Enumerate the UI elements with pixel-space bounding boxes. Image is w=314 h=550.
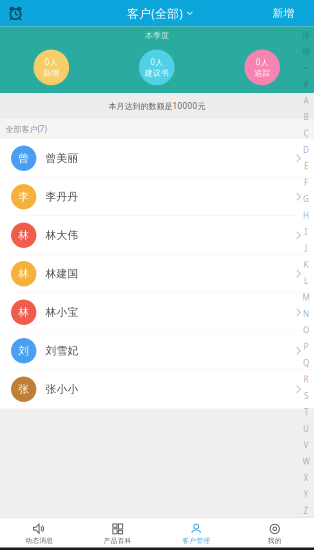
staticText: N bbox=[303, 308, 309, 319]
button[interactable]: 张 bbox=[0, 370, 314, 408]
staticText: O bbox=[303, 325, 309, 335]
button[interactable]: 客户管理 bbox=[157, 518, 235, 547]
staticText: 曾美丽 bbox=[46, 152, 79, 165]
staticText: 林 bbox=[18, 229, 29, 242]
staticText: Z bbox=[303, 505, 308, 516]
staticText: 李丹丹 bbox=[46, 190, 79, 203]
button[interactable]: 动态消息 bbox=[0, 518, 78, 547]
staticText: J bbox=[305, 243, 307, 253]
staticText: S bbox=[304, 390, 308, 401]
staticText: F bbox=[304, 177, 308, 188]
staticText: X bbox=[303, 472, 308, 483]
staticText: 动 bbox=[302, 46, 310, 56]
staticText: C bbox=[303, 128, 308, 139]
staticText: 建议书 bbox=[145, 68, 169, 78]
button[interactable]: 林 bbox=[0, 216, 314, 254]
staticText: 动态消息 bbox=[25, 536, 53, 545]
staticText: B bbox=[303, 112, 308, 122]
staticText: K bbox=[303, 259, 308, 270]
staticText: 我的 bbox=[268, 537, 282, 545]
staticText: ~ bbox=[303, 62, 308, 73]
staticText: T bbox=[304, 407, 308, 417]
staticText: 0人 bbox=[256, 57, 269, 67]
staticText: P bbox=[303, 341, 308, 352]
staticText: 产品百科 bbox=[104, 537, 132, 545]
button[interactable]: 刘 bbox=[0, 331, 314, 370]
staticText: Q bbox=[303, 358, 309, 368]
staticText: 曾 bbox=[18, 152, 29, 165]
staticText: 全部客户(7) bbox=[5, 124, 46, 134]
staticText: V bbox=[303, 440, 308, 450]
staticText: 林大伟 bbox=[46, 229, 79, 242]
button[interactable]: 我的 bbox=[235, 518, 314, 547]
staticText: 追踪 bbox=[254, 68, 270, 78]
staticText: M bbox=[302, 292, 309, 303]
staticText: 0人 bbox=[45, 57, 58, 67]
staticText: 李 bbox=[18, 190, 29, 203]
button[interactable]: 林 bbox=[0, 254, 314, 293]
staticText: 林小宝 bbox=[46, 306, 79, 319]
button[interactable]: 0人 bbox=[33, 50, 69, 85]
staticText: 本季度 bbox=[145, 31, 169, 40]
staticText: I bbox=[304, 226, 307, 237]
staticText: 0人 bbox=[150, 57, 163, 67]
staticText: 本月达到的数额是10000元 bbox=[108, 101, 205, 111]
staticText: 活 bbox=[302, 30, 310, 40]
staticText: # bbox=[303, 79, 308, 89]
staticText: G bbox=[303, 194, 309, 204]
staticText: L bbox=[304, 276, 308, 286]
button[interactable]: 林 bbox=[0, 293, 314, 331]
staticText: H bbox=[303, 210, 309, 221]
button[interactable]: 新增 bbox=[272, 0, 314, 26]
staticText: 林建国 bbox=[46, 267, 79, 280]
button[interactable]: 闹钟 bbox=[0, 0, 31, 26]
staticText: 林 bbox=[18, 267, 29, 280]
staticText: 刘雪妃 bbox=[46, 344, 79, 357]
button[interactable]: 产品百科 bbox=[78, 518, 157, 547]
button[interactable]: 曾 bbox=[0, 139, 314, 177]
staticText: 刘 bbox=[18, 344, 29, 357]
staticText: 新增 bbox=[43, 68, 59, 78]
staticText: 张小小 bbox=[46, 383, 79, 396]
staticText: 林 bbox=[18, 306, 29, 319]
button[interactable]: 客户(全部) bbox=[127, 0, 193, 26]
staticText: 客户管理 bbox=[182, 537, 210, 545]
staticText: 客户(全部) bbox=[127, 5, 183, 21]
staticText: U bbox=[303, 423, 309, 434]
staticText: W bbox=[302, 456, 309, 467]
button[interactable]: 0人 bbox=[139, 50, 175, 85]
button[interactable]: 0人 bbox=[244, 50, 280, 85]
button[interactable]: 李 bbox=[0, 177, 314, 216]
staticText: D bbox=[303, 144, 309, 155]
staticText: 张 bbox=[18, 383, 29, 396]
staticText: A bbox=[303, 95, 308, 106]
staticText: R bbox=[303, 374, 308, 385]
staticText: E bbox=[304, 161, 308, 171]
staticText: Y bbox=[303, 489, 308, 499]
staticText: 新增 bbox=[272, 7, 294, 20]
